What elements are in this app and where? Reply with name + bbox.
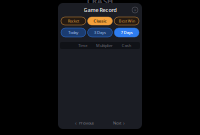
staticText: Rocket xyxy=(68,18,79,24)
button[interactable]: Next xyxy=(111,119,127,127)
button[interactable]: Classic xyxy=(88,17,112,25)
button[interactable]: Today xyxy=(61,28,86,37)
staticText: 3 Days xyxy=(94,30,106,35)
staticText: 7 Days xyxy=(121,30,133,35)
staticText: CRASH xyxy=(87,0,113,7)
staticText: Game Record xyxy=(83,6,116,14)
staticText: Previous xyxy=(79,120,94,126)
button[interactable]: 3 Days xyxy=(88,28,112,37)
staticText: Best Win xyxy=(119,18,135,24)
staticText: Multiplier xyxy=(96,43,113,48)
button[interactable]: Close xyxy=(132,7,138,13)
staticText: Classic xyxy=(93,18,106,24)
staticText: ‹ xyxy=(75,119,77,127)
button[interactable]: ‹ xyxy=(73,119,96,127)
staticText: × xyxy=(134,7,136,13)
button[interactable]: Best Win xyxy=(114,17,139,25)
staticText: Today xyxy=(68,30,78,35)
button[interactable]: 7 Days xyxy=(114,28,139,37)
staticText: Time xyxy=(78,43,87,48)
button[interactable]: Rocket xyxy=(61,17,86,25)
staticText: Next xyxy=(113,120,121,126)
staticText: › xyxy=(123,119,125,127)
staticText: Cash xyxy=(122,43,131,48)
